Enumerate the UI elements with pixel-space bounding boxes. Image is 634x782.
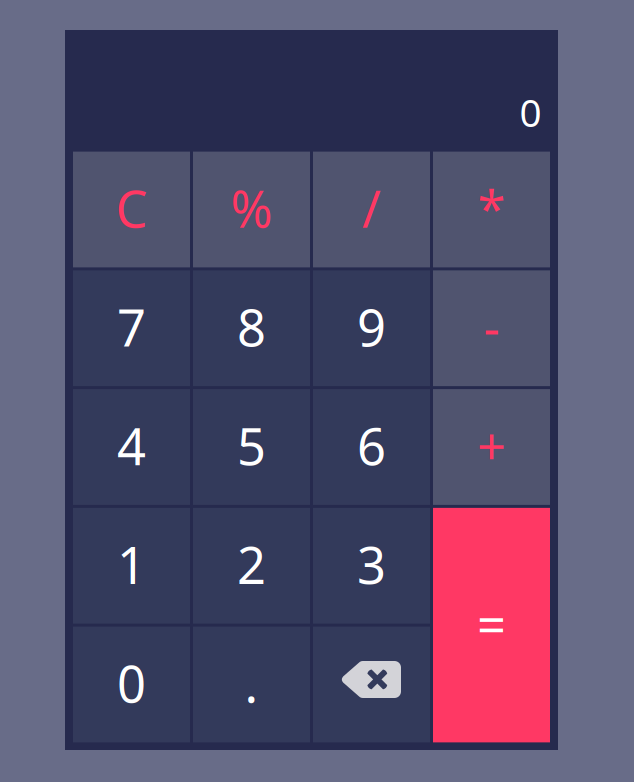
staticText: 4 bbox=[117, 412, 146, 479]
button[interactable]: 6 bbox=[313, 389, 430, 505]
button[interactable]: 3 bbox=[313, 508, 430, 624]
staticText: 6 bbox=[357, 412, 386, 479]
button[interactable]: % bbox=[193, 152, 310, 267]
button[interactable]: 4 bbox=[73, 389, 190, 505]
staticText: C bbox=[115, 174, 147, 242]
button[interactable]: 2 bbox=[193, 508, 310, 624]
staticText: 2 bbox=[237, 531, 266, 598]
staticText: 5 bbox=[237, 412, 266, 479]
button[interactable]: C bbox=[73, 152, 190, 267]
staticText: * bbox=[477, 174, 505, 242]
button[interactable]: = bbox=[433, 508, 550, 742]
button[interactable]: 8 bbox=[193, 270, 310, 386]
button[interactable]: Delete bbox=[313, 627, 430, 742]
staticText: . bbox=[244, 649, 258, 717]
button[interactable]: + bbox=[433, 389, 550, 505]
button[interactable]: . bbox=[193, 627, 310, 742]
button[interactable]: 5 bbox=[193, 389, 310, 505]
button[interactable]: - bbox=[433, 270, 550, 386]
button[interactable]: 0 bbox=[73, 627, 190, 742]
button[interactable]: 1 bbox=[73, 508, 190, 624]
button[interactable]: * bbox=[433, 152, 550, 267]
staticText: - bbox=[483, 293, 499, 360]
button[interactable]: / bbox=[313, 152, 430, 267]
staticText: = bbox=[477, 590, 506, 657]
button[interactable]: 9 bbox=[313, 270, 430, 386]
staticText: / bbox=[362, 174, 381, 242]
staticText: % bbox=[230, 174, 272, 242]
staticText: 7 bbox=[117, 293, 146, 360]
staticText: + bbox=[477, 412, 506, 479]
staticText: 0 bbox=[117, 649, 146, 717]
staticText: 1 bbox=[117, 531, 146, 598]
button[interactable]: 7 bbox=[73, 270, 190, 386]
staticText: 0 bbox=[519, 86, 541, 138]
staticText: 9 bbox=[357, 293, 386, 360]
staticText: 3 bbox=[357, 531, 386, 598]
staticText: 8 bbox=[237, 293, 266, 360]
